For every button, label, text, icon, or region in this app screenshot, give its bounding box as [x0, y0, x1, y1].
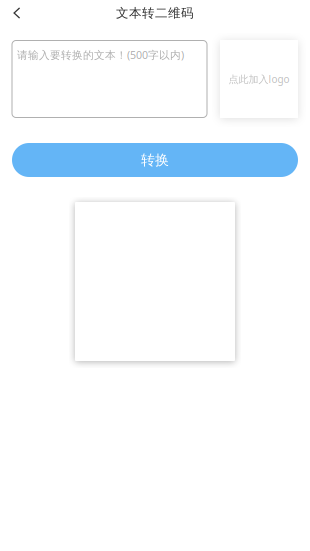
staticText: 点此加入logo	[228, 72, 289, 86]
button[interactable]: Back	[5, 0, 25, 26]
staticText: 文本转二维码	[116, 5, 194, 21]
button[interactable]: 点此加入logo	[220, 40, 298, 118]
staticText: 转换	[141, 151, 169, 169]
button[interactable]: 请输入要转换的文本！(500字以内)	[12, 40, 207, 117]
staticText: 请输入要转换的文本！(500字以内)	[17, 47, 184, 62]
button[interactable]: 转换	[12, 143, 298, 177]
